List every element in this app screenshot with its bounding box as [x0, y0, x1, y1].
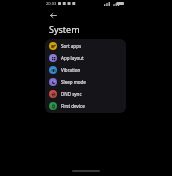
- button[interactable]: DND sync: [45, 88, 126, 100]
- staticText: System: [49, 23, 80, 35]
- staticText: 20:03: [46, 1, 57, 6]
- staticText: Vibration: [61, 67, 81, 73]
- staticText: App layout: [61, 55, 84, 61]
- staticText: DND sync: [61, 91, 82, 97]
- button[interactable]: App layout: [45, 52, 126, 64]
- button[interactable]: First device: [45, 100, 126, 112]
- button[interactable]: Sort apps: [45, 40, 126, 52]
- staticText: Sort apps: [61, 43, 82, 49]
- button[interactable]: Vibration: [45, 64, 126, 76]
- staticText: Sleep mode: [61, 79, 86, 85]
- button[interactable]: Back: [47, 9, 60, 22]
- staticText: First device: [61, 103, 85, 109]
- button[interactable]: Sleep mode: [45, 76, 126, 88]
